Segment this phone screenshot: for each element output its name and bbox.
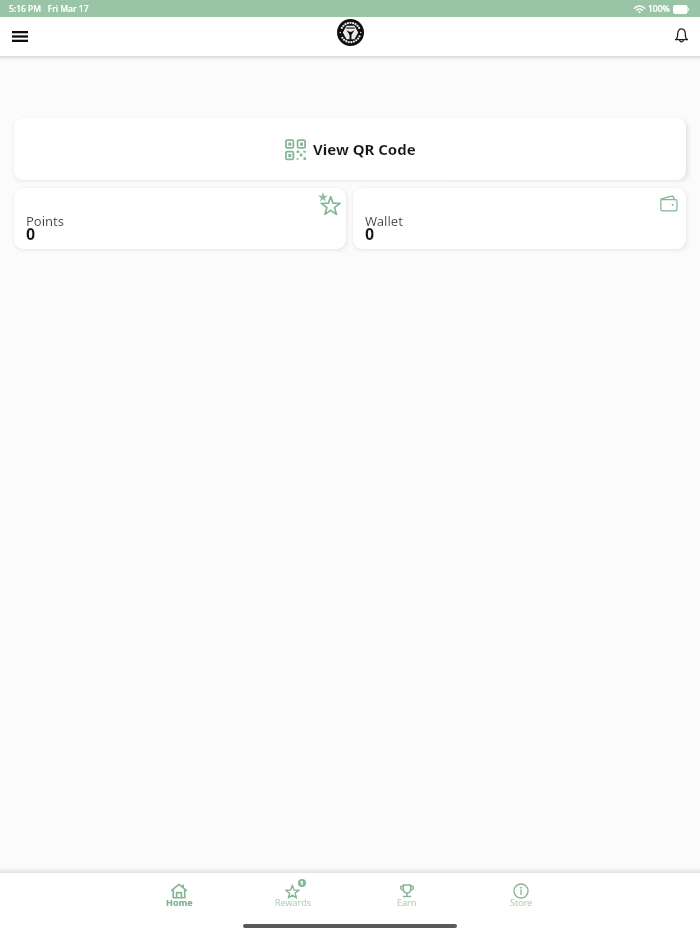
staticText: 0 [365, 223, 375, 245]
button[interactable]: Earn [350, 873, 464, 915]
button[interactable]: View QR Code [14, 118, 686, 180]
staticText: Home [166, 896, 193, 908]
staticText: 1 [300, 879, 304, 887]
staticText: Earn [397, 896, 417, 908]
button[interactable]: Home [122, 873, 236, 915]
button[interactable]: Open navigation menu [3, 20, 36, 53]
staticText: 5:16 PM Fri Mar 17 [9, 3, 89, 15]
button[interactable]: Busy Bee Organics home [337, 19, 364, 46]
button[interactable]: Points [14, 188, 346, 249]
staticText: Points [26, 212, 65, 230]
button[interactable]: 1 [236, 873, 350, 915]
staticText: Rewards [275, 896, 312, 908]
staticText: 100% [648, 3, 670, 15]
staticText: 0 [26, 223, 36, 245]
button[interactable]: Wallet [353, 188, 686, 249]
staticText: Wallet [365, 212, 403, 230]
button[interactable]: Store [464, 873, 578, 915]
staticText: View QR Code [313, 139, 416, 159]
button[interactable]: Notifications [666, 20, 696, 50]
staticText: Store [510, 896, 533, 908]
